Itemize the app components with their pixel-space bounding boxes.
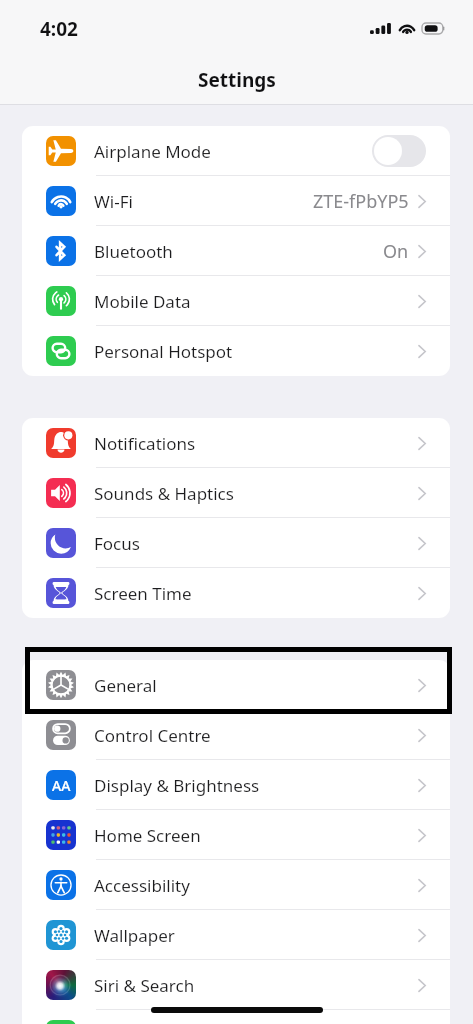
staticText: General	[94, 674, 157, 697]
staticText: Sounds & Haptics	[94, 482, 234, 505]
button[interactable]: Bluetooth	[22, 226, 450, 276]
button[interactable]: Screen Time	[22, 568, 450, 618]
button[interactable]: Airplane Mode	[22, 126, 450, 176]
staticText: Airplane Mode	[94, 140, 211, 163]
button[interactable]: Personal Hotspot	[22, 326, 450, 376]
button[interactable]: Mobile Data	[22, 276, 450, 326]
staticText: Notifications	[94, 432, 196, 455]
button[interactable]: Wi-Fi	[22, 176, 450, 226]
staticText: On	[383, 239, 409, 264]
staticText: Wi-Fi	[94, 190, 133, 213]
button[interactable]: Notifications	[22, 418, 450, 468]
staticText: Wallpaper	[94, 924, 175, 947]
staticText: Bluetooth	[94, 240, 173, 263]
staticText: Accessibility	[94, 874, 190, 897]
staticText: Siri & Search	[94, 974, 195, 997]
button[interactable]: Home Screen	[22, 810, 450, 860]
button[interactable]: Control Centre	[22, 710, 450, 760]
staticText: Focus	[94, 532, 140, 555]
staticText: Home Screen	[94, 824, 201, 847]
staticText: Personal Hotspot	[94, 340, 233, 363]
staticText: Display & Brightness	[94, 774, 260, 797]
button[interactable]: Airplane Mode toggle	[372, 135, 426, 167]
button[interactable]: General	[22, 660, 450, 710]
staticText: AA	[52, 776, 71, 795]
button[interactable]: Wallpaper	[22, 910, 450, 960]
button[interactable]: Accessibility	[22, 860, 450, 910]
button[interactable]: Focus	[22, 518, 450, 568]
staticText: Control Centre	[94, 724, 211, 747]
button[interactable]: Sounds & Haptics	[22, 468, 450, 518]
staticText: ZTE-fPbYP5	[313, 189, 409, 214]
staticText: 4:02	[40, 16, 78, 42]
staticText: Settings	[198, 67, 276, 93]
staticText: Screen Time	[94, 582, 192, 605]
button[interactable]: AA	[22, 760, 450, 810]
button[interactable]: Siri & Search	[22, 960, 450, 1010]
staticText: Mobile Data	[94, 290, 191, 313]
button[interactable]: Wallet & Apple Pay	[22, 1010, 450, 1024]
